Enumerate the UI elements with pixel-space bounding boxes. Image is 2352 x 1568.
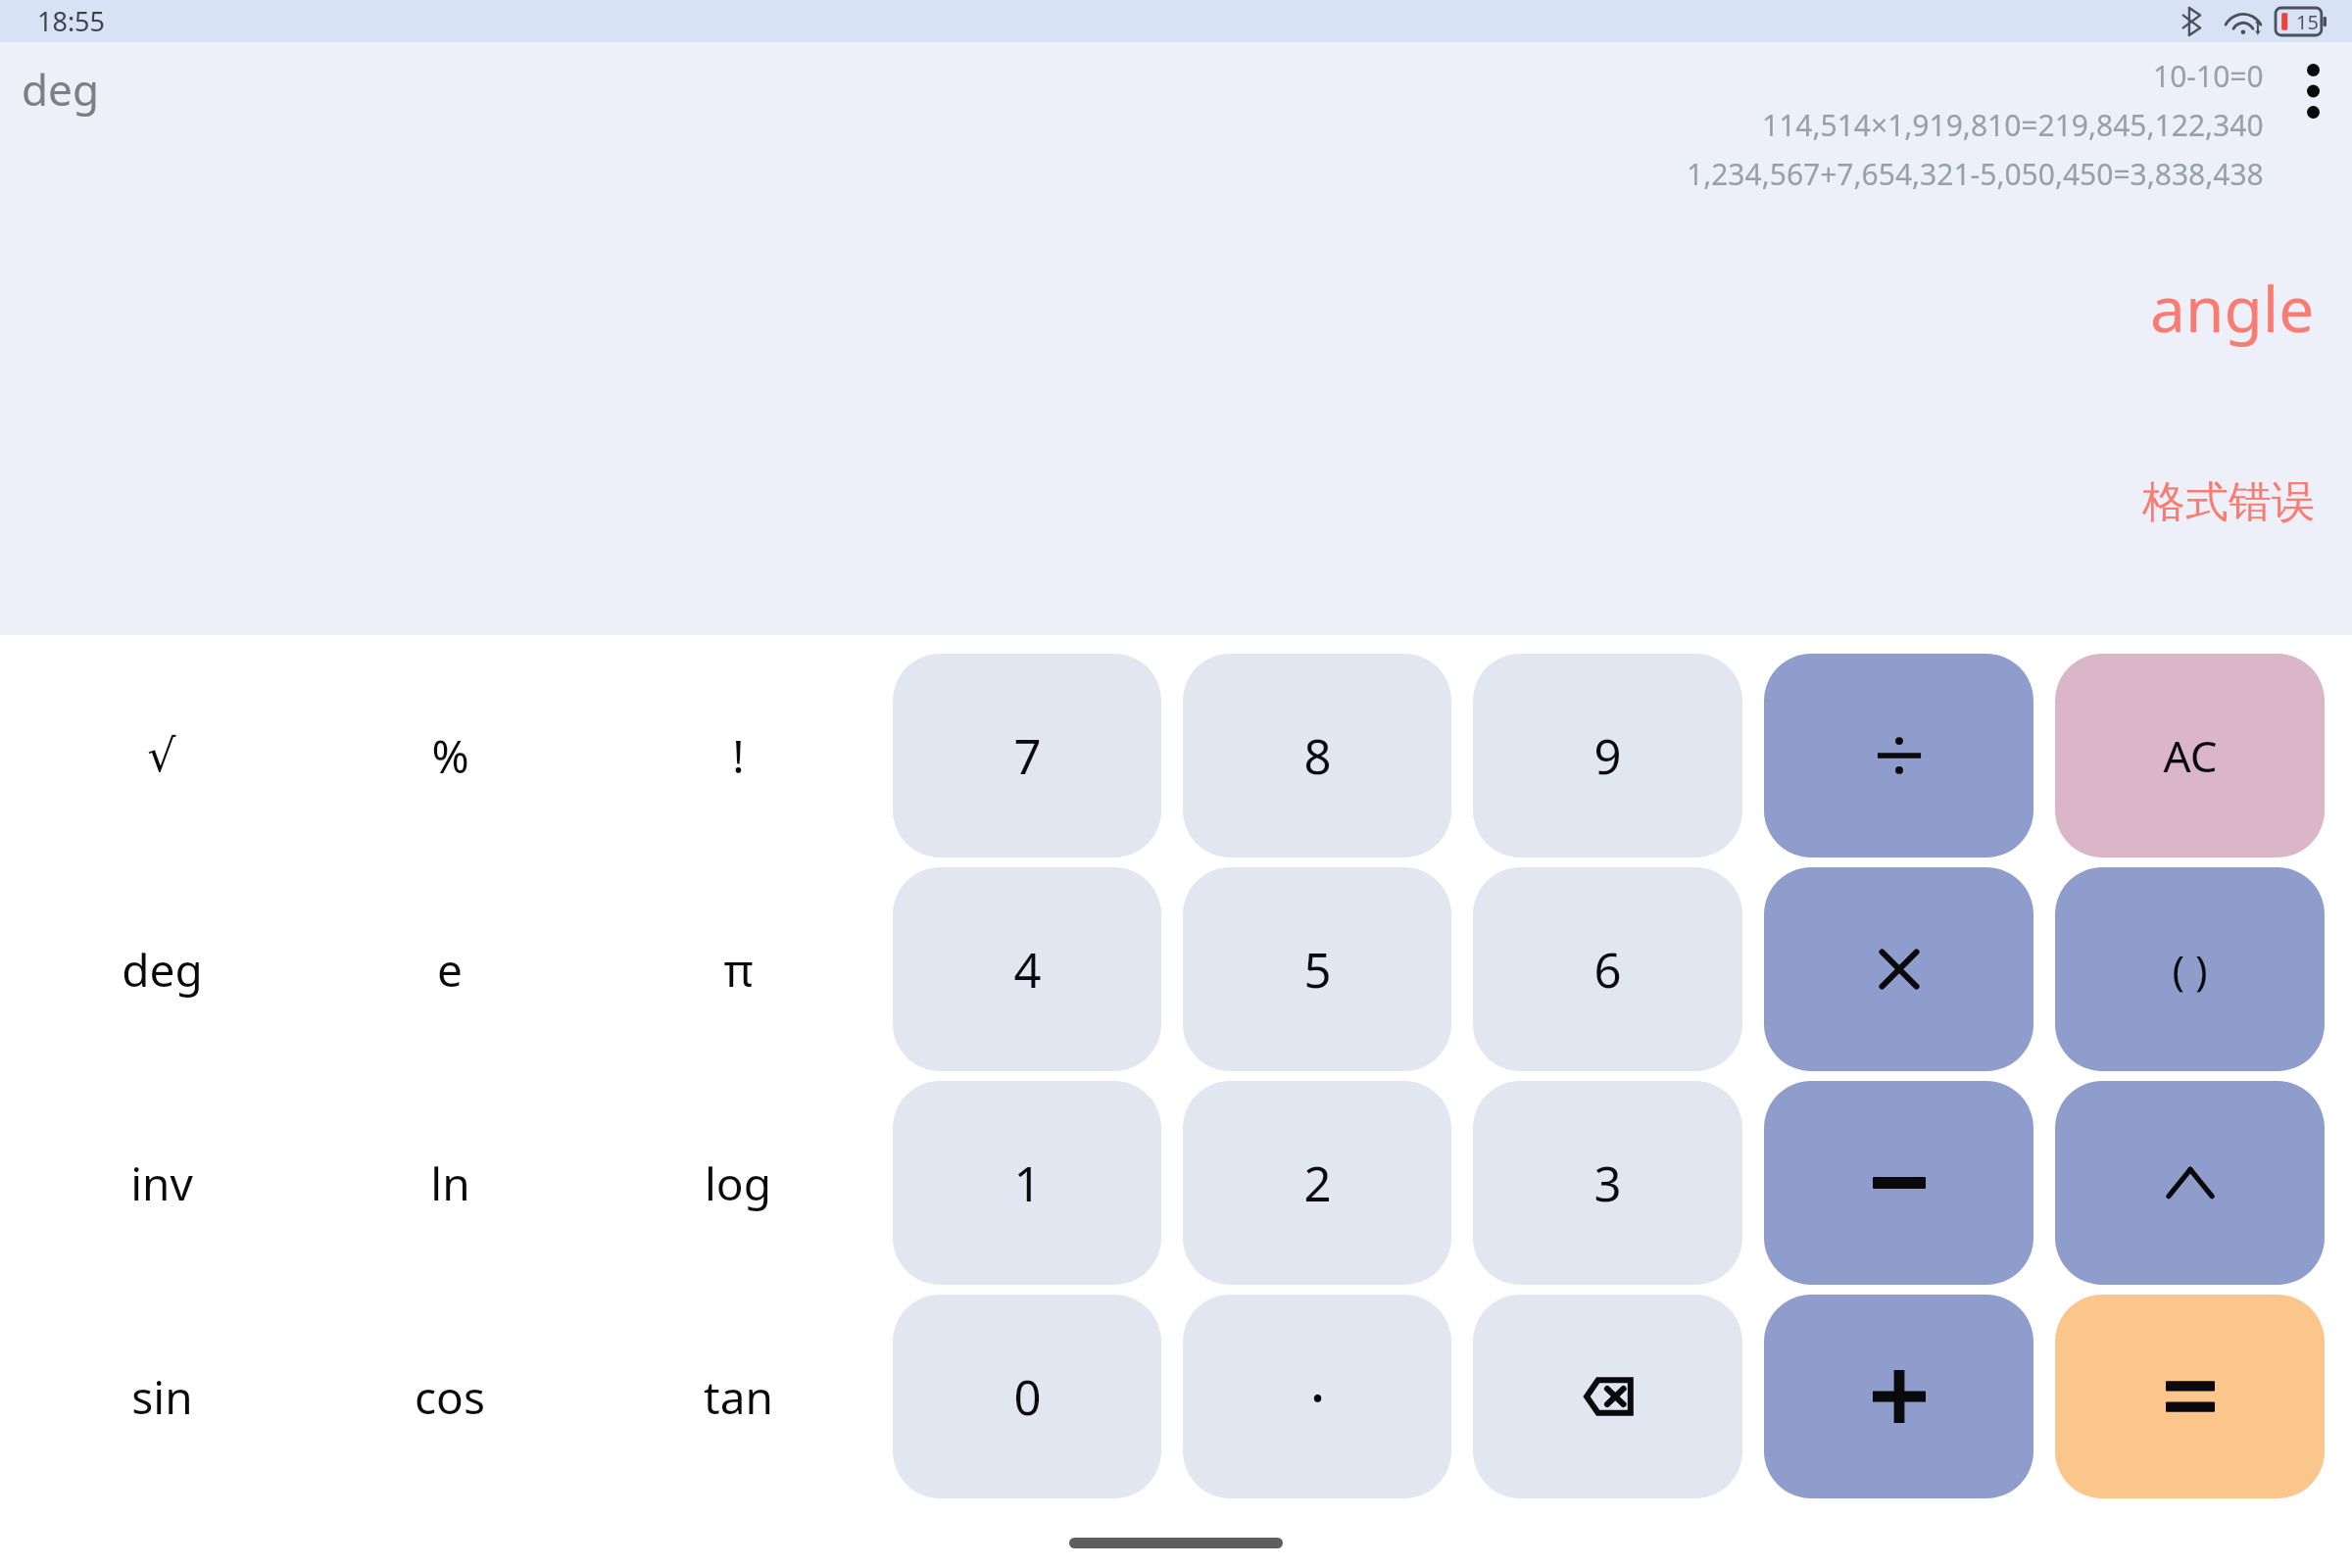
button[interactable]: Equals <box>2055 1295 2325 1498</box>
button[interactable]: 6 <box>1473 867 1742 1071</box>
staticText: ( ) <box>2172 942 2208 998</box>
staticText: tan <box>704 1366 773 1428</box>
button[interactable]: 4 <box>893 867 1161 1071</box>
staticText: 9 <box>1593 723 1622 789</box>
button[interactable]: Minus <box>1764 1081 2033 1285</box>
staticText: 114,514×1,919,810=219,845,122,340 <box>1762 105 2264 145</box>
button[interactable]: √ <box>67 649 257 862</box>
button[interactable]: ( ) <box>2055 867 2325 1071</box>
button[interactable]: % <box>355 649 545 862</box>
button[interactable]: Backspace <box>1473 1295 1742 1498</box>
staticText: 1,234,567+7,654,321-5,050,450=3,838,438 <box>1687 154 2264 194</box>
staticText: 4 <box>1013 937 1042 1003</box>
button[interactable]: 0 <box>893 1295 1161 1498</box>
staticText: 格式错误 <box>2142 475 2315 529</box>
staticText: 0 <box>1013 1364 1042 1430</box>
staticText: 18:55 <box>37 3 106 39</box>
button[interactable]: ! <box>643 649 833 862</box>
staticText: 2 <box>1303 1151 1332 1216</box>
button[interactable]: 7 <box>893 654 1161 857</box>
button[interactable]: sin <box>67 1290 257 1503</box>
button[interactable]: Divide <box>1764 654 2033 857</box>
staticText: √ <box>147 729 176 782</box>
button[interactable]: deg <box>67 862 257 1076</box>
staticText: log <box>705 1152 771 1214</box>
staticText: angle <box>2150 266 2315 351</box>
staticText: π <box>723 939 754 1001</box>
button[interactable]: 9 <box>1473 654 1742 857</box>
button[interactable]: Power <box>2055 1081 2325 1285</box>
button[interactable]: π <box>643 862 833 1076</box>
staticText: 6 <box>1593 937 1622 1003</box>
button[interactable]: tan <box>643 1290 833 1503</box>
button[interactable]: AC <box>2055 654 2325 857</box>
button[interactable]: inv <box>67 1076 257 1290</box>
button[interactable]: 3 <box>1473 1081 1742 1285</box>
staticText: e <box>437 939 463 1001</box>
staticText: 1 <box>1013 1151 1042 1216</box>
staticText: · <box>1309 1356 1326 1437</box>
staticText: deg <box>122 939 203 1001</box>
button[interactable]: 8 <box>1183 654 1451 857</box>
button[interactable]: More options <box>2281 52 2344 130</box>
staticText: 7 <box>1013 723 1042 789</box>
button[interactable]: log <box>643 1076 833 1290</box>
staticText: ln <box>430 1152 470 1214</box>
button[interactable]: 5 <box>1183 867 1451 1071</box>
staticText: deg <box>22 60 99 119</box>
button[interactable]: cos <box>355 1290 545 1503</box>
staticText: 10-10=0 <box>2153 56 2264 96</box>
staticText: AC <box>2163 726 2218 785</box>
staticText: % <box>431 725 469 787</box>
staticText: 8 <box>1303 723 1332 789</box>
button[interactable]: · <box>1183 1295 1451 1498</box>
staticText: 5 <box>1303 937 1332 1003</box>
button[interactable]: Plus <box>1764 1295 2033 1498</box>
staticText: 3 <box>1593 1151 1622 1216</box>
staticText: sin <box>131 1366 193 1428</box>
button[interactable]: e <box>355 862 545 1076</box>
staticText: ! <box>732 725 745 787</box>
button[interactable]: 1 <box>893 1081 1161 1285</box>
button[interactable]: 2 <box>1183 1081 1451 1285</box>
button[interactable]: Multiply <box>1764 867 2033 1071</box>
staticText: inv <box>130 1152 193 1214</box>
staticText: 15 <box>2296 9 2319 35</box>
staticText: cos <box>415 1366 485 1428</box>
button[interactable]: ln <box>355 1076 545 1290</box>
